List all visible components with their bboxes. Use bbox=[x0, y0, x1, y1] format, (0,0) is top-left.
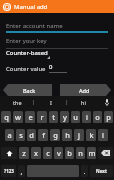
staticText: r bbox=[40, 112, 44, 122]
button[interactable]: c bbox=[43, 147, 52, 159]
staticText: b bbox=[67, 148, 72, 158]
staticText: z bbox=[22, 148, 26, 158]
button[interactable]: f bbox=[38, 129, 48, 141]
staticText: ?123 bbox=[4, 168, 14, 174]
button[interactable]: , bbox=[18, 165, 25, 177]
button[interactable]: k bbox=[86, 129, 96, 141]
button[interactable]: Back bbox=[0, 84, 52, 96]
button[interactable]: v bbox=[54, 147, 63, 159]
staticText: t bbox=[52, 112, 55, 122]
button[interactable]: Add bbox=[60, 84, 114, 96]
button[interactable]: App icon bbox=[0, 0, 114, 13]
staticText: Back bbox=[23, 87, 36, 94]
button[interactable]: d bbox=[27, 129, 36, 141]
button[interactable]: Backspace bbox=[98, 147, 113, 159]
staticText: w bbox=[15, 112, 21, 122]
staticText: Counter-based bbox=[6, 49, 48, 57]
button[interactable]: u bbox=[71, 111, 80, 123]
button[interactable]: Counter-based bbox=[6, 49, 108, 57]
staticText: p bbox=[106, 112, 111, 122]
staticText: d bbox=[29, 130, 34, 140]
staticText: I bbox=[50, 99, 52, 106]
button[interactable]: p bbox=[104, 111, 113, 123]
staticText: Add bbox=[79, 87, 90, 94]
staticText: f bbox=[42, 130, 45, 140]
button[interactable]: q bbox=[1, 111, 11, 123]
staticText: Next bbox=[96, 168, 107, 174]
button[interactable]: the bbox=[0, 96, 34, 108]
staticText: . bbox=[83, 166, 86, 176]
staticText: o bbox=[95, 112, 100, 122]
staticText: m bbox=[88, 148, 96, 158]
button[interactable]: r bbox=[37, 111, 47, 123]
button[interactable]: . bbox=[81, 165, 88, 177]
button[interactable]: ?123 bbox=[1, 165, 16, 177]
staticText: Manual add bbox=[14, 3, 48, 11]
button[interactable]: m bbox=[87, 147, 96, 159]
staticText: g bbox=[53, 130, 58, 140]
button[interactable]: hi bbox=[67, 96, 100, 108]
button[interactable]: j bbox=[74, 129, 84, 141]
staticText: x bbox=[34, 148, 38, 158]
button[interactable]: s bbox=[16, 129, 25, 141]
staticText: 0 bbox=[49, 63, 53, 71]
staticText: y bbox=[63, 112, 67, 122]
button[interactable]: o bbox=[93, 111, 102, 123]
other: App icon bbox=[3, 3, 11, 11]
staticText: j bbox=[78, 130, 80, 140]
button[interactable]: e bbox=[25, 111, 35, 123]
button[interactable]: x bbox=[31, 147, 41, 159]
button[interactable]: b bbox=[65, 147, 74, 159]
button[interactable]: w bbox=[13, 111, 23, 123]
staticText: c bbox=[46, 148, 50, 158]
staticText: s bbox=[19, 130, 23, 140]
button[interactable]: z bbox=[19, 147, 29, 159]
staticText: h bbox=[65, 130, 70, 140]
button[interactable]: h bbox=[62, 129, 72, 141]
staticText: Enter account name bbox=[6, 22, 63, 30]
button[interactable]: n bbox=[76, 147, 85, 159]
staticText: u bbox=[73, 112, 78, 122]
button[interactable]: t bbox=[49, 111, 58, 123]
staticText: a bbox=[7, 130, 12, 140]
button[interactable]: I bbox=[34, 96, 67, 108]
staticText: hi bbox=[81, 99, 86, 106]
button[interactable]: Enter account name bbox=[6, 22, 108, 33]
staticText: n bbox=[78, 148, 83, 158]
staticText: Enter your key bbox=[6, 37, 47, 45]
button[interactable]: y bbox=[60, 111, 69, 123]
staticText: e bbox=[28, 112, 33, 122]
staticText: q bbox=[4, 112, 9, 122]
staticText: Counter value bbox=[6, 65, 46, 73]
button[interactable]: a bbox=[5, 129, 14, 141]
button[interactable]: g bbox=[50, 129, 60, 141]
staticText: i bbox=[86, 112, 88, 122]
button[interactable]: Enter your key bbox=[6, 37, 108, 49]
staticText: k bbox=[89, 130, 94, 140]
button[interactable]: l bbox=[98, 129, 108, 141]
staticText: , bbox=[20, 166, 23, 176]
button[interactable]: 0 bbox=[49, 63, 67, 73]
staticText: the bbox=[13, 99, 22, 106]
button[interactable]: Voice input bbox=[100, 96, 114, 108]
button[interactable]: i bbox=[82, 111, 91, 123]
staticText: v bbox=[57, 148, 61, 158]
staticText: l bbox=[102, 130, 104, 140]
button[interactable]: Next bbox=[90, 165, 113, 177]
button[interactable]: Shift bbox=[1, 147, 17, 159]
